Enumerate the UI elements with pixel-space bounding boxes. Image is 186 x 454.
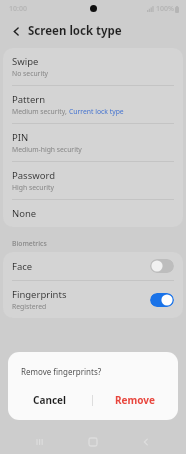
staticText: 100% (156, 4, 174, 14)
button[interactable]: On (150, 293, 174, 307)
button[interactable]: Swipe (3, 48, 183, 85)
staticText: Remove (115, 393, 156, 407)
staticText: Current lock type (69, 107, 124, 116)
staticText: Remove fingerprints? (21, 366, 102, 377)
staticText: Medium security, (12, 107, 69, 116)
button[interactable]: Remove (93, 390, 178, 410)
button[interactable]: Face (3, 252, 183, 280)
button[interactable]: Home (80, 430, 106, 454)
staticText: PIN (12, 131, 29, 144)
button[interactable]: None (3, 200, 183, 227)
button[interactable]: Off (150, 259, 174, 273)
staticText: Face (12, 260, 33, 273)
staticText: Biometrics (12, 239, 47, 248)
button[interactable]: Back (7, 22, 25, 40)
staticText: 10:00 (9, 4, 27, 14)
staticText: Password (12, 169, 55, 182)
staticText: Registered (12, 302, 47, 311)
button[interactable]: Cancel (8, 390, 92, 410)
staticText: Screen lock type (28, 23, 122, 39)
staticText: Medium-high security (12, 145, 82, 154)
staticText: Swipe (12, 55, 39, 68)
button[interactable]: Fingerprints (3, 281, 183, 318)
staticText: Pattern (12, 93, 46, 106)
button[interactable]: PIN (3, 124, 183, 161)
staticText: Fingerprints (12, 288, 67, 301)
staticText: No security (12, 69, 49, 78)
button[interactable]: Password (3, 162, 183, 199)
staticText: None (12, 207, 37, 220)
staticText: High security (12, 183, 54, 192)
button[interactable]: Pattern (3, 86, 183, 123)
staticText: Cancel (33, 393, 67, 407)
